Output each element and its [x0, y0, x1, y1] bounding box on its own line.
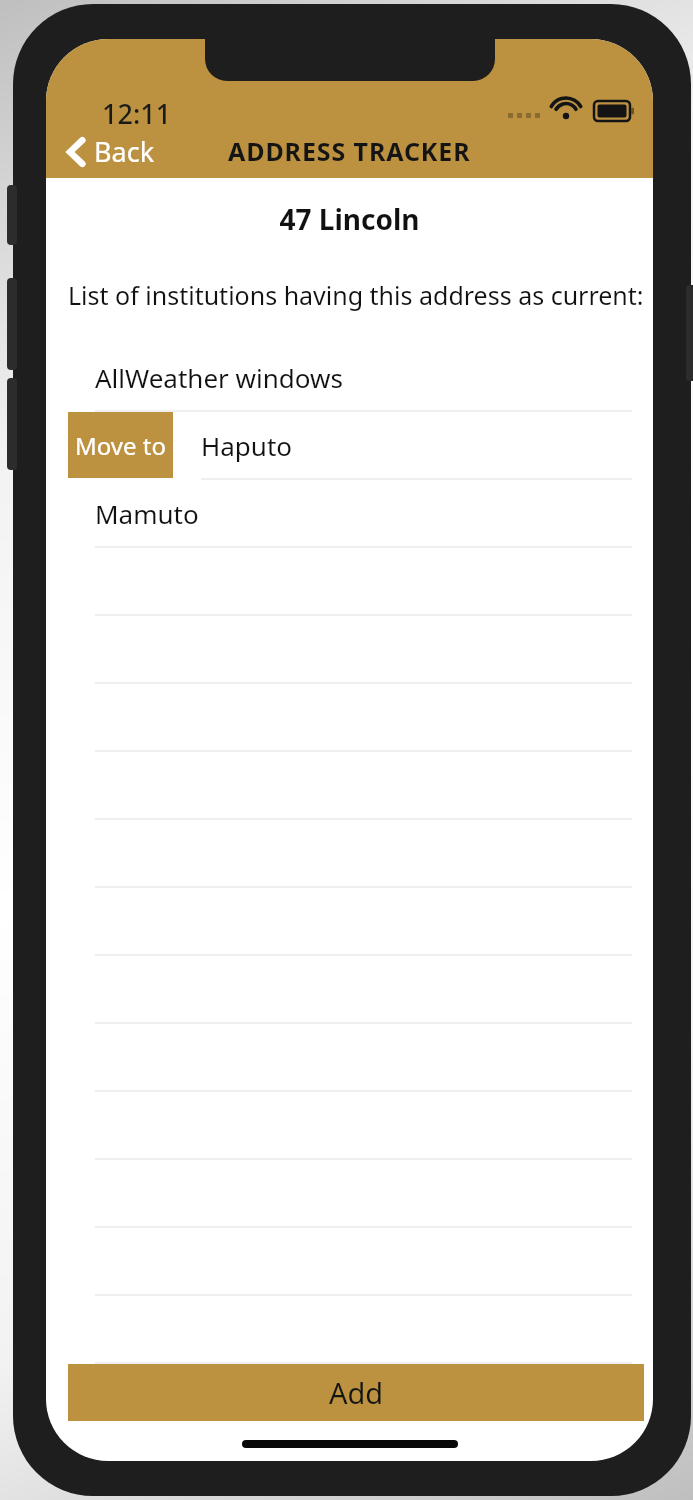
button[interactable]: AllWeather windows: [46, 344, 653, 412]
staticText: Move to: [75, 429, 166, 462]
button[interactable]: Haputo: [201, 412, 653, 478]
staticText: Add: [329, 1373, 384, 1412]
staticText: 47 Lincoln: [46, 200, 653, 238]
button[interactable]: Move to: [68, 412, 173, 478]
staticText: ADDRESS TRACKER: [228, 134, 471, 168]
button[interactable]: Add: [68, 1364, 644, 1421]
staticText: List of institutions having this address…: [68, 278, 644, 312]
button[interactable]: Back: [58, 127, 163, 176]
staticText: Back: [94, 133, 155, 170]
button[interactable]: Mamuto: [46, 480, 653, 548]
staticText: Mamuto: [95, 496, 199, 531]
staticText: 12:11: [102, 95, 172, 132]
staticText: Haputo: [201, 428, 293, 463]
staticText: AllWeather windows: [95, 360, 343, 395]
